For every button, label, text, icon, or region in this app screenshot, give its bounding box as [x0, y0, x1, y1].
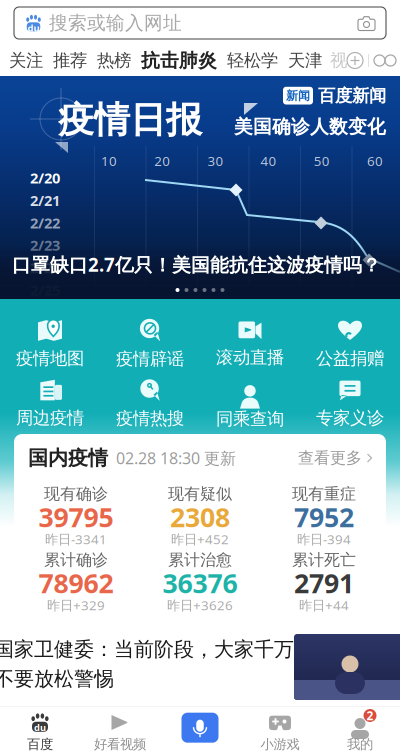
button[interactable]: du [0, 0, 400, 45]
staticText: 周边疫情 [16, 407, 84, 429]
staticText: 2/23 [30, 235, 60, 255]
staticText: 小游戏 [260, 736, 299, 752]
staticText: 疫情辟谣 [116, 348, 184, 370]
staticText: 国家卫健委：当前阶段，大家千万 [0, 637, 294, 662]
button[interactable]: 2 [320, 712, 400, 752]
button[interactable]: 关注 [4, 45, 48, 76]
staticText: 40 [261, 152, 277, 170]
button[interactable]: 天津 [283, 45, 327, 76]
button[interactable]: 热榜 [92, 45, 136, 76]
staticText: 现有重症 [292, 484, 356, 504]
button[interactable]: 好看视频 [80, 712, 160, 752]
staticText: 滚动直播 [216, 347, 284, 368]
staticText: 2308 [170, 499, 230, 535]
button[interactable]: 轻松学 [222, 45, 283, 76]
button[interactable]: 国家卫健委：当前阶段，大家千万 [0, 625, 400, 706]
staticText: 30 [207, 152, 223, 170]
staticText: 2/25 [30, 280, 60, 300]
button[interactable]: 抗击肺炎 [136, 45, 222, 76]
staticText: 昨日-394 [297, 530, 351, 548]
staticText: 20 [154, 152, 170, 170]
staticText: 搜索或输入网址 [49, 11, 182, 34]
staticText: 2/24 [30, 258, 60, 277]
button[interactable]: 国内疫情 [14, 443, 386, 473]
button[interactable]: 疫情日报 [0, 76, 400, 300]
staticText: 百度新闻 [318, 85, 386, 106]
staticText: 2 [366, 707, 373, 723]
staticText: 关注 [9, 50, 43, 71]
staticText: 昨日+3626 [167, 596, 233, 614]
staticText: 天津 [288, 50, 322, 71]
staticText: 不要放松警惕 [0, 667, 114, 691]
staticText: 轻松学 [227, 50, 278, 71]
staticText: 7952 [294, 499, 354, 535]
staticText: 昨日-3341 [45, 530, 107, 548]
staticText: 昨日+452 [171, 530, 229, 548]
staticText: 疫情地图 [16, 348, 84, 369]
button[interactable]: 推荐 [48, 45, 92, 76]
staticText: 好看视频 [94, 736, 146, 752]
button[interactable]: 同乘查询 [200, 378, 300, 430]
button[interactable]: du [0, 712, 80, 752]
staticText: 国内疫情 [28, 446, 108, 470]
button[interactable]: 周边疫情 [0, 379, 100, 429]
staticText: 新闻 [286, 88, 310, 103]
staticText: 热榜 [97, 50, 131, 71]
button[interactable]: 滚动直播 [200, 320, 300, 368]
staticText: 39795 [38, 499, 113, 535]
staticText: 10 [101, 152, 117, 170]
staticText: 同乘查询 [216, 408, 284, 430]
staticText: 现有疑似 [168, 484, 232, 504]
staticText: 累计死亡 [292, 550, 356, 570]
staticText: 2/22 [30, 213, 60, 232]
button[interactable]: 疫情地图 [0, 319, 100, 369]
staticText: 78962 [38, 565, 113, 601]
staticText: 美国确诊人数变化 [234, 115, 386, 138]
button[interactable]: 疫情辟谣 [100, 318, 200, 370]
staticText: 2/20 [30, 168, 60, 187]
staticText: 60 [367, 152, 383, 170]
staticText: 疫情日报 [58, 98, 202, 142]
button[interactable]: 听新闻 [374, 54, 396, 66]
staticText: 36376 [162, 565, 237, 601]
staticText: 疫情热搜 [116, 408, 184, 429]
staticText: 推荐 [53, 50, 87, 71]
staticText: 累计治愈 [168, 550, 232, 570]
staticText: 02.28 18:30 更新 [116, 447, 236, 469]
staticText: 昨日+329 [47, 596, 105, 614]
staticText: 2791 [294, 565, 354, 601]
staticText: 我的 [347, 736, 373, 752]
staticText: 累计确诊 [44, 550, 108, 570]
staticText: 现有确诊 [44, 484, 108, 504]
staticText: 抗击肺炎 [141, 49, 217, 72]
staticText: 公益捐赠 [316, 348, 384, 369]
staticText: 视 [330, 50, 347, 71]
staticText: 口罩缺口2.7亿只！美国能抗住这波疫情吗？ [12, 252, 381, 277]
staticText: 50 [314, 152, 330, 170]
button[interactable]: 添加频道 [347, 52, 363, 68]
button[interactable]: 公益捐赠 [300, 319, 400, 369]
staticText: du [34, 721, 46, 734]
button[interactable]: 语音搜索 [160, 713, 240, 752]
staticText: du [27, 22, 39, 34]
staticText: 2/21 [30, 190, 60, 210]
staticText: 专家义诊 [316, 407, 384, 429]
staticText: 昨日+44 [299, 596, 349, 614]
button[interactable]: 疫情热搜 [100, 379, 200, 429]
button[interactable]: 小游戏 [240, 712, 320, 752]
staticText: 查看更多 [298, 448, 362, 468]
button[interactable]: 专家义诊 [300, 379, 400, 429]
staticText: 百度 [27, 736, 53, 752]
